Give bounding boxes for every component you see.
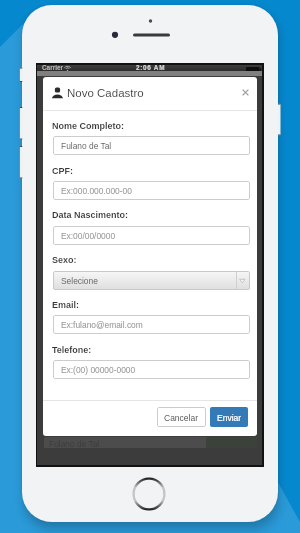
button[interactable]: Fulano de Tal: [53, 136, 250, 155]
staticText: Nome Completo:: [52, 121, 124, 131]
staticText: Cancelar: [164, 413, 199, 422]
button[interactable]: Sexo: [53, 271, 250, 290]
staticText: Email:: [52, 300, 80, 310]
staticText: Novo Cadastro: [67, 87, 144, 100]
button[interactable]: Cancelar: [157, 407, 206, 427]
button[interactable]: Ex:00/00/0000: [53, 226, 250, 245]
staticText: Ex:(00) 00000-0000: [61, 365, 136, 374]
staticText: Carrier: [42, 64, 63, 71]
staticText: Telefone:: [52, 345, 92, 355]
staticText: Fulano de Tal: [61, 141, 112, 150]
staticText: Data Nascimento:: [52, 210, 129, 220]
button[interactable]: Enviar: [210, 407, 248, 427]
staticText: Ex:000.000.000-00: [61, 186, 132, 195]
button[interactable]: Ex:fulano@email.com: [53, 315, 250, 334]
staticText: Ex:00/00/0000: [61, 231, 116, 240]
staticText: CPF:: [52, 166, 73, 176]
button[interactable]: Fechar: [231, 81, 257, 103]
staticText: Sexo:: [52, 255, 77, 265]
staticText: Fulano de Tal: [49, 439, 100, 448]
staticText: Enviar: [217, 413, 242, 422]
staticText: 2:06 AM: [136, 64, 166, 71]
staticText: Ex:fulano@email.com: [61, 320, 143, 329]
staticText: Selecione: [61, 276, 98, 285]
button[interactable]: Ex:000.000.000-00: [53, 181, 250, 200]
button[interactable]: Ex:(00) 00000-0000: [53, 360, 250, 379]
